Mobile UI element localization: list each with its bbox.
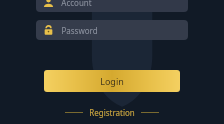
staticText: Account — [61, 0, 92, 8]
other: Account — [43, 0, 54, 8]
staticText: Login — [100, 75, 124, 87]
button[interactable]: Account — [36, 0, 188, 12]
staticText: Password — [61, 25, 98, 36]
staticText: Registration — [89, 107, 135, 118]
other: Password — [43, 25, 54, 36]
button[interactable]: Password — [36, 20, 188, 40]
button[interactable]: Login — [44, 70, 180, 92]
button[interactable]: Registration — [0, 105, 224, 119]
